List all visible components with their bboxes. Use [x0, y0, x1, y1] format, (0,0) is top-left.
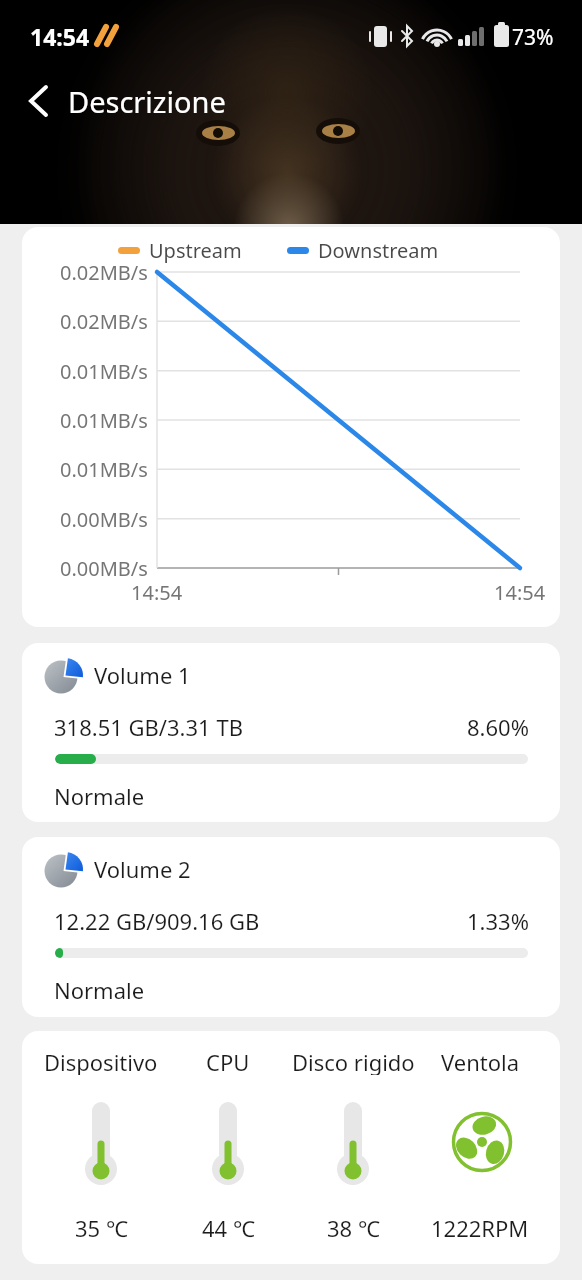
- staticText: Volume 2: [94, 854, 191, 882]
- staticText: 318.51 GB/3.31 TB: [54, 712, 243, 740]
- staticText: Normale: [54, 975, 145, 1003]
- staticText: Dispositivo: [44, 1047, 158, 1075]
- staticText: 0.01MB/s: [60, 407, 148, 433]
- staticText: 35 ℃: [75, 1213, 128, 1241]
- staticText: Upstream: [149, 237, 242, 263]
- staticText: Disco rigido: [292, 1047, 415, 1075]
- staticText: Volume 1: [94, 660, 191, 688]
- staticText: 14:54: [494, 579, 546, 605]
- staticText: 38 ℃: [327, 1213, 380, 1241]
- staticText: 0.01MB/s: [60, 456, 148, 482]
- staticText: 1.33%: [467, 906, 529, 934]
- staticText: 14:54: [131, 579, 183, 605]
- staticText: 0.01MB/s: [60, 358, 148, 384]
- staticText: 73%: [512, 23, 554, 52]
- staticText: Downstream: [318, 237, 439, 263]
- staticText: 0.02MB/s: [60, 308, 148, 334]
- staticText: 0.02MB/s: [60, 259, 148, 285]
- staticText: 14:54: [30, 21, 90, 52]
- staticText: Ventola: [441, 1047, 520, 1075]
- staticText: 12.22 GB/909.16 GB: [54, 906, 260, 934]
- staticText: 1222RPM: [431, 1213, 529, 1241]
- staticText: 8.60%: [467, 712, 529, 740]
- staticText: 0.00MB/s: [60, 555, 148, 581]
- staticText: 0.00MB/s: [60, 506, 148, 532]
- staticText: 44 ℃: [202, 1213, 255, 1241]
- staticText: Normale: [54, 781, 145, 809]
- staticText: CPU: [206, 1047, 250, 1075]
- staticText: Descrizione: [68, 82, 226, 121]
